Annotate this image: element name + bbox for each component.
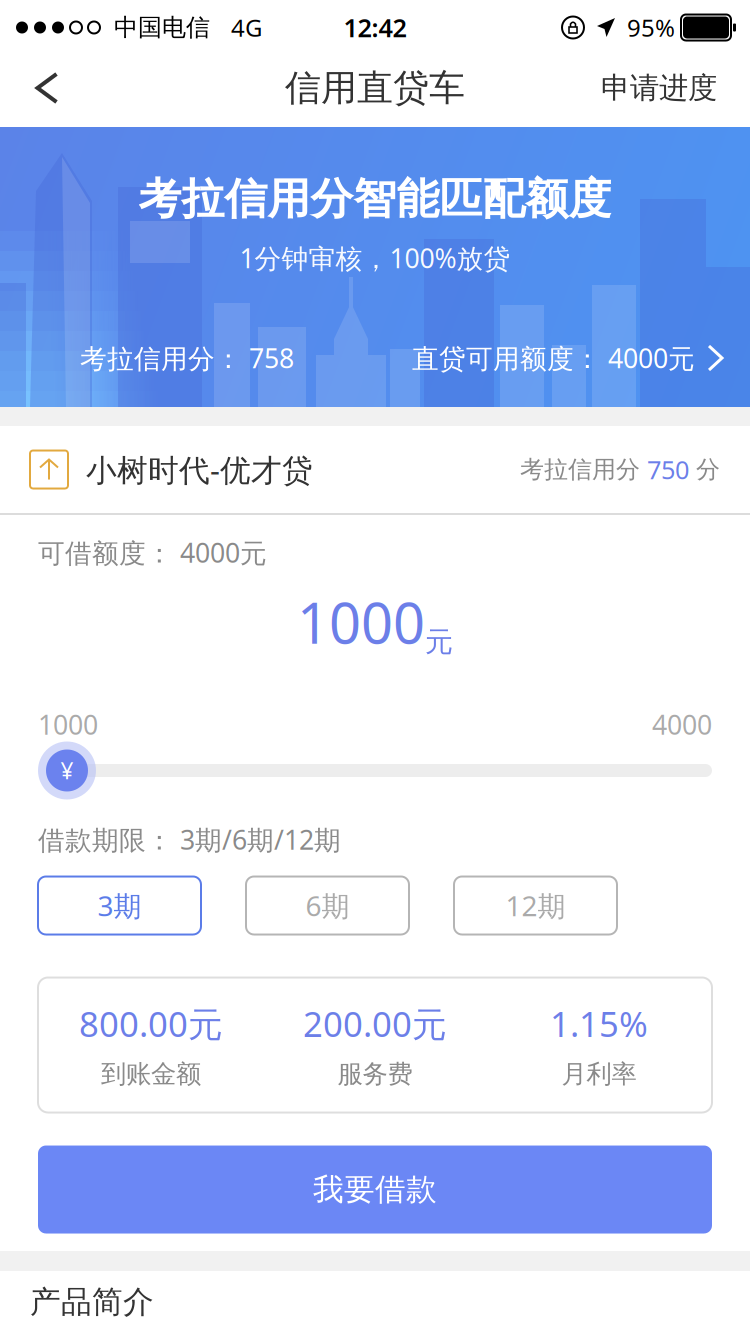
button[interactable]: 返回 [0,52,94,124]
button[interactable]: 6期 [246,876,409,934]
staticText: 我要借款 [313,1171,437,1208]
staticText: 800.00元 [79,1000,223,1046]
staticText: 申请进度 [601,70,717,106]
staticText: 1000 [38,707,98,742]
button[interactable]: 直贷可用额度： 4000元 [412,340,722,376]
staticText: 信用直贷车 [285,66,465,110]
staticText: 4G [231,12,262,43]
staticText: 12期 [505,887,565,924]
button[interactable]: 12期 [454,876,617,934]
staticText: 元 [425,625,453,659]
staticText: 中国电信 [100,13,231,42]
button[interactable]: 3期 [38,876,201,934]
staticText: 借款期限： 3期/6期/12期 [38,822,341,857]
staticText: 12:42 [343,11,406,44]
staticText: 1分钟审核，100%放贷 [239,240,510,276]
staticText: 产品简介 [30,1283,154,1321]
staticText: 直贷可用额度： 4000元 [412,340,695,376]
staticText: ¥ [60,755,73,785]
button[interactable]: 我要借款 [38,1145,712,1233]
staticText: 750 [647,453,689,486]
staticText: 6期 [305,887,349,924]
staticText: 考拉信用分： 758 [80,340,294,376]
staticText: 3期 [97,887,141,924]
button[interactable]: 小树时代-优才贷 [0,426,750,513]
staticText: 95% [627,12,681,43]
button[interactable]: 申请进度 [589,52,750,124]
staticText: 到账金额 [101,1058,201,1090]
staticText: 4000 [652,707,712,742]
staticText: 200.00元 [303,1000,447,1046]
staticText: 考拉信用分智能匹配额度 [138,173,611,225]
staticText: 分 [689,455,720,484]
staticText: 考拉信用分 [520,455,647,484]
staticText: 月利率 [561,1058,636,1090]
staticText: 小树时代-优才贷 [68,449,313,490]
staticText: 1.15% [550,1000,648,1046]
staticText: 服务费 [337,1058,412,1090]
staticText: 1000 [297,585,425,659]
staticText: 可借额度： 4000元 [38,535,267,570]
